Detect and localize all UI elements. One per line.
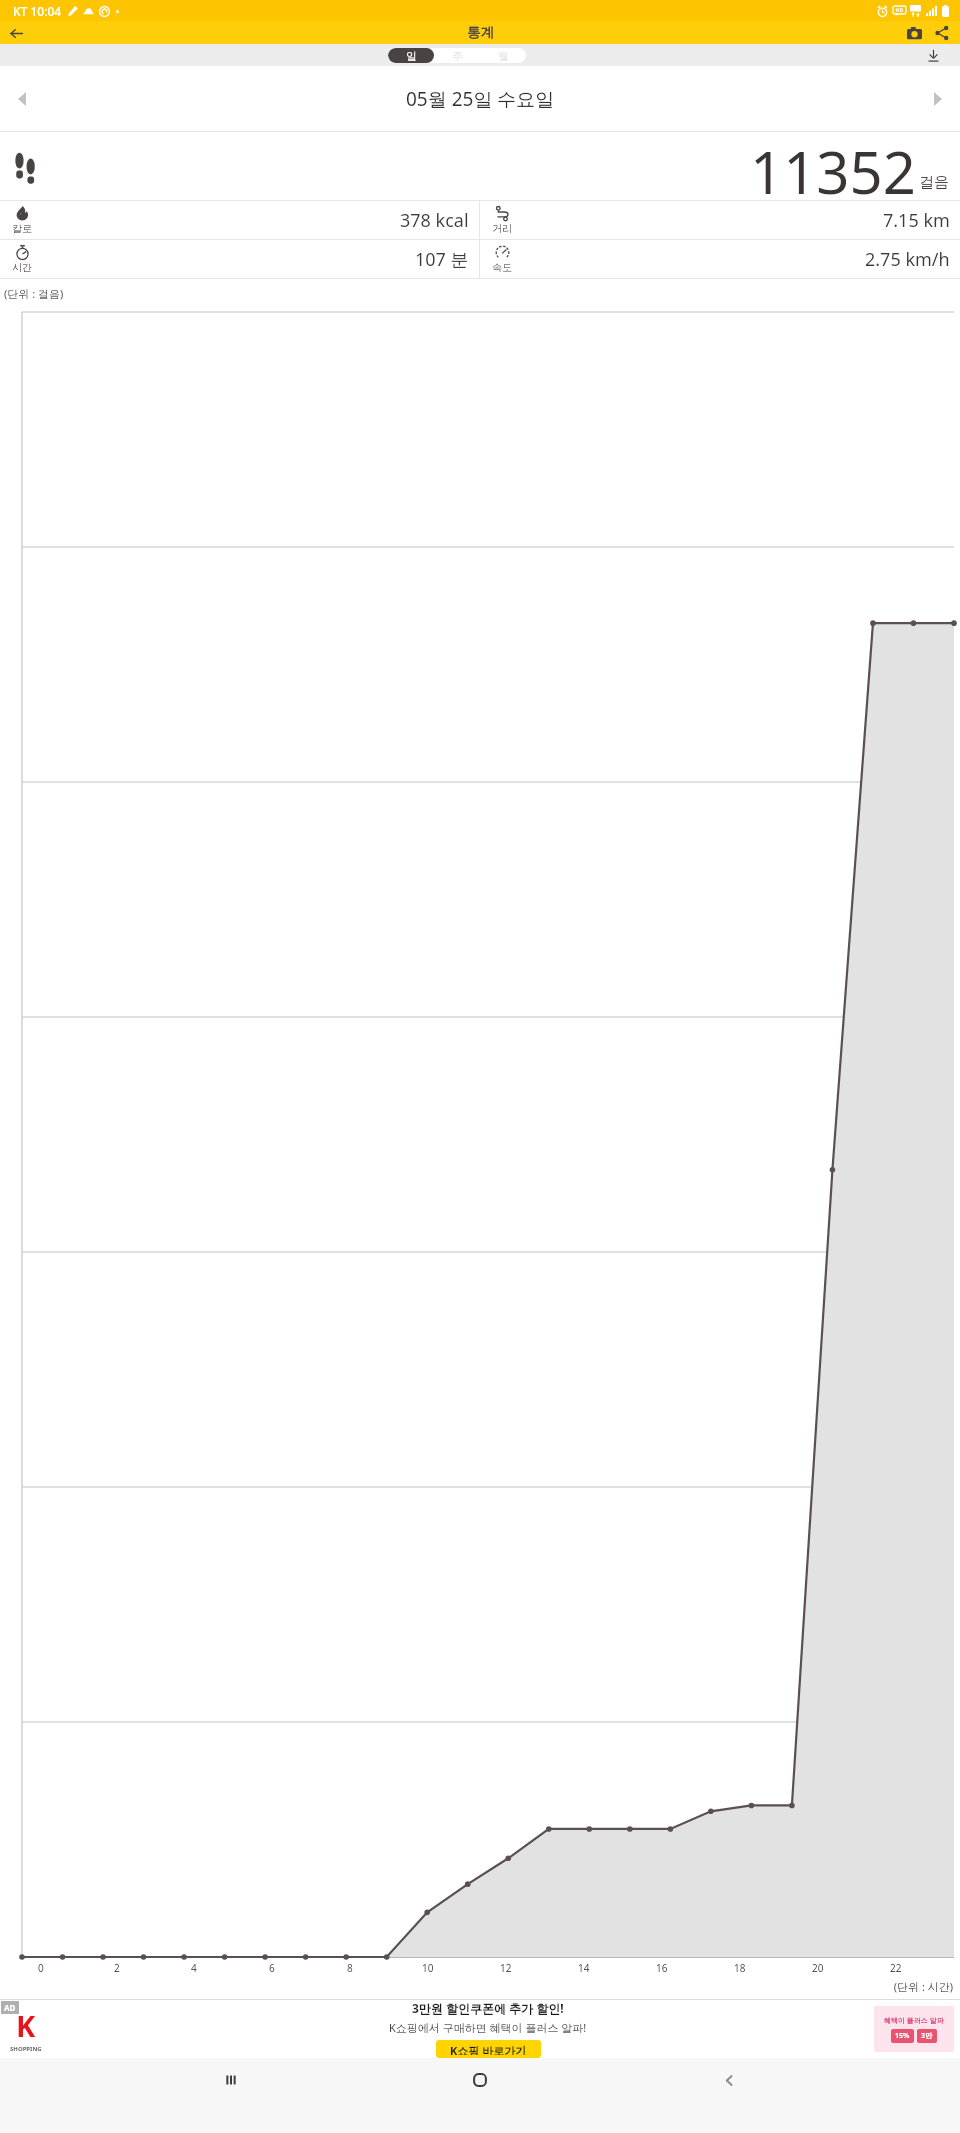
staticText: 0 <box>38 1961 44 1975</box>
staticText: 혜택이 플러스 알파 <box>884 2016 944 2026</box>
staticText: K <box>16 2006 36 2045</box>
staticText: 2.75 km/h <box>865 247 950 272</box>
button[interactable]: AD <box>0 2000 960 2058</box>
staticText: 16 <box>656 1961 668 1975</box>
staticText: K쇼핑 바로가기 <box>450 2043 527 2055</box>
staticText: 거리 <box>492 222 512 235</box>
staticText: 107 분 <box>415 247 469 272</box>
staticText: 월 <box>498 49 509 63</box>
button[interactable]: K쇼핑 바로가기 <box>436 2040 541 2058</box>
button[interactable]: Home <box>462 2062 498 2098</box>
staticText: (단위 : 걸음) <box>4 286 64 301</box>
button[interactable]: Download <box>922 44 944 66</box>
button[interactable]: 일 <box>388 48 434 63</box>
button[interactable]: 월 <box>480 48 526 63</box>
staticText: 일 <box>406 49 417 63</box>
staticText: 15% <box>895 2031 910 2041</box>
button[interactable]: 혜택이 플러스 알파 <box>874 2006 954 2052</box>
staticText: 22 <box>890 1961 902 1975</box>
staticText: 통계 <box>467 24 494 41</box>
staticText: 12 <box>500 1961 512 1975</box>
staticText: 4 <box>191 1961 197 1975</box>
staticText: 시간 <box>12 261 32 274</box>
staticText: SHOPPING <box>10 2045 42 2053</box>
button[interactable]: 거리 <box>480 201 960 239</box>
button[interactable]: 시간 <box>0 240 479 278</box>
button[interactable]: Next day <box>923 84 953 114</box>
staticText: 378 kcal <box>400 208 469 233</box>
button[interactable]: Back <box>711 2062 747 2098</box>
staticText: 10 <box>422 1961 434 1975</box>
staticText: 20 <box>812 1961 824 1975</box>
staticText: K쇼핑에서 구매하면 혜택이 플러스 알파! <box>389 2020 587 2035</box>
button[interactable]: Share <box>931 22 953 44</box>
button[interactable]: Camera <box>903 22 925 44</box>
staticText: 6 <box>269 1961 275 1975</box>
staticText: 칼로 <box>12 222 32 235</box>
button[interactable]: Back <box>5 22 27 44</box>
button[interactable]: Recents <box>213 2062 249 2098</box>
staticText: 14 <box>578 1961 590 1975</box>
button[interactable]: 칼로 <box>0 201 479 239</box>
button[interactable]: 속도 <box>480 240 960 278</box>
staticText: 2 <box>114 1961 120 1975</box>
staticText: 8 <box>347 1961 353 1975</box>
staticText: 18 <box>734 1961 746 1975</box>
staticText: 3만원 할인쿠폰에 추가 할인! <box>412 2000 564 2016</box>
staticText: AD <box>4 2002 16 2013</box>
staticText: 주 <box>452 49 463 63</box>
staticText: (단위 : 시간) <box>0 1979 953 1994</box>
staticText: KT 10:04 <box>13 3 62 19</box>
staticText: 11352 <box>750 132 916 200</box>
staticText: 속도 <box>492 261 512 274</box>
staticText: 3만 <box>921 2031 933 2041</box>
staticText: 7.15 km <box>883 208 950 233</box>
button[interactable]: 11352 <box>0 132 960 200</box>
staticText: 05월 25일 수요일 <box>406 86 555 112</box>
button[interactable]: Previous day <box>7 84 37 114</box>
staticText: 걸음 <box>919 173 949 192</box>
button[interactable]: 주 <box>434 48 480 63</box>
